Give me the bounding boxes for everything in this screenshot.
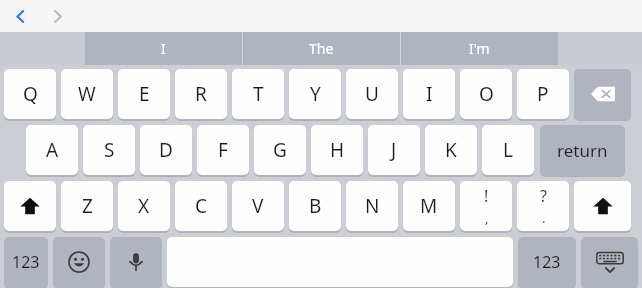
button[interactable]: I — [403, 69, 455, 119]
button[interactable]: Shift — [4, 181, 56, 231]
button[interactable]: Emoji — [53, 237, 105, 287]
button[interactable]: 123 — [4, 237, 48, 287]
button[interactable]: I'm — [401, 32, 558, 65]
button[interactable]: Hide keyboard — [581, 237, 638, 287]
staticText: N — [365, 193, 380, 219]
button[interactable]: K — [425, 125, 477, 175]
button[interactable]: return — [540, 125, 625, 175]
button[interactable]: Q — [4, 69, 56, 119]
button[interactable]: U — [346, 69, 398, 119]
staticText: . — [542, 209, 546, 227]
button[interactable]: Dictation — [110, 237, 162, 287]
staticText: G — [273, 137, 287, 163]
staticText: W — [78, 81, 96, 107]
staticText: A — [46, 137, 59, 163]
staticText: The — [309, 39, 334, 58]
button[interactable]: ? — [517, 181, 569, 231]
staticText: ! — [484, 185, 489, 207]
staticText: J — [391, 137, 397, 163]
button[interactable]: Shift — [574, 181, 631, 231]
staticText: Z — [82, 193, 93, 219]
button[interactable]: Backspace — [574, 69, 631, 119]
button[interactable]: F — [197, 125, 249, 175]
button[interactable]: H — [311, 125, 363, 175]
button[interactable]: O — [460, 69, 512, 119]
button[interactable]: C — [175, 181, 227, 231]
button[interactable]: ! — [460, 181, 512, 231]
button[interactable]: T — [232, 69, 284, 119]
staticText: ? — [540, 185, 547, 207]
button[interactable]: The — [243, 32, 400, 65]
button[interactable]: R — [175, 69, 227, 119]
button[interactable]: D — [140, 125, 192, 175]
staticText: Q — [23, 81, 38, 107]
staticText: R — [195, 81, 207, 107]
staticText: S — [104, 137, 115, 163]
button[interactable]: Y — [289, 69, 341, 119]
button[interactable]: Previous field — [3, 0, 37, 32]
button[interactable]: N — [346, 181, 398, 231]
button[interactable]: B — [289, 181, 341, 231]
staticText: C — [195, 193, 208, 219]
staticText: F — [218, 137, 228, 163]
staticText: I'm — [469, 39, 490, 58]
button[interactable]: S — [83, 125, 135, 175]
staticText: Y — [310, 81, 321, 107]
button[interactable]: G — [254, 125, 306, 175]
button[interactable]: Z — [61, 181, 113, 231]
button[interactable]: X — [118, 181, 170, 231]
staticText: I — [426, 81, 433, 107]
staticText: U — [365, 81, 379, 107]
staticText: L — [503, 137, 513, 163]
button[interactable]: V — [232, 181, 284, 231]
button[interactable]: W — [61, 69, 113, 119]
staticText: 123 — [12, 251, 40, 273]
button[interactable]: I — [85, 32, 242, 65]
staticText: K — [445, 137, 457, 163]
button[interactable]: M — [403, 181, 455, 231]
staticText: X — [138, 193, 150, 219]
button[interactable]: E — [118, 69, 170, 119]
button[interactable]: 123 — [518, 237, 576, 287]
staticText: D — [159, 137, 173, 163]
staticText: P — [537, 81, 549, 107]
staticText: I — [161, 39, 166, 58]
staticText: E — [139, 81, 150, 107]
staticText: O — [479, 81, 494, 107]
button[interactable]: Next field — [40, 0, 74, 32]
staticText: B — [309, 193, 322, 219]
staticText: return — [557, 139, 608, 162]
staticText: 123 — [533, 251, 561, 273]
button[interactable]: J — [368, 125, 420, 175]
button[interactable]: A — [26, 125, 78, 175]
button[interactable]: P — [517, 69, 569, 119]
staticText: T — [253, 81, 264, 107]
staticText: , — [485, 209, 489, 227]
staticText: H — [330, 137, 345, 163]
staticText: M — [420, 193, 438, 219]
staticText: V — [252, 193, 264, 219]
button[interactable]: L — [482, 125, 534, 175]
